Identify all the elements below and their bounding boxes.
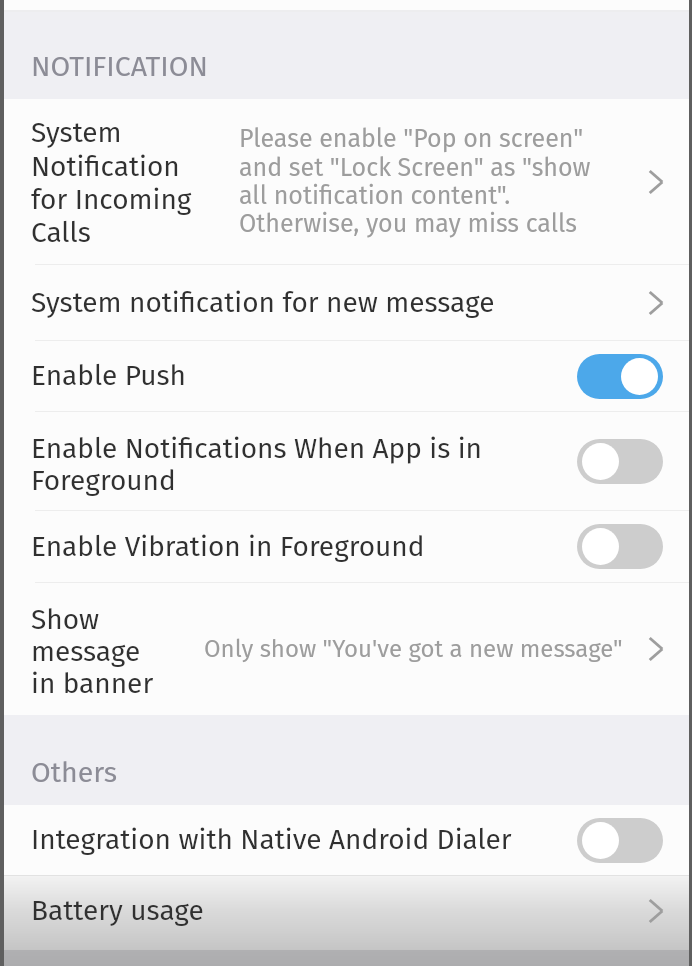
- button[interactable]: Integration with native Android dialer t…: [577, 818, 663, 863]
- staticText: Others: [31, 755, 118, 789]
- staticText: Show message in banner: [31, 603, 166, 701]
- button[interactable]: Enable Push: [4, 341, 689, 411]
- staticText: NOTIFICATION: [31, 49, 208, 83]
- staticText: Enable Notifications When App is in Fore…: [31, 432, 493, 497]
- button[interactable]: Enable Notifications When App is in Fore…: [4, 412, 689, 510]
- button[interactable]: Show message in banner: [4, 583, 689, 715]
- button[interactable]: Integration with Native Android Dialer: [4, 805, 689, 875]
- button[interactable]: Enable notifications when app is in fore…: [577, 439, 663, 484]
- staticText: Enable Push: [31, 359, 577, 393]
- button[interactable]: Enable vibration in foreground toggle: [577, 524, 663, 569]
- staticText: Please enable "Pop on screen" and set "L…: [239, 124, 591, 239]
- button[interactable]: System Notification for Incoming Calls: [4, 99, 689, 264]
- button[interactable]: Battery usage: [4, 876, 689, 966]
- staticText: Integration with Native Android Dialer: [31, 823, 577, 857]
- staticText: Only show "You've got a new message": [204, 635, 623, 664]
- staticText: Battery usage: [31, 894, 647, 928]
- button[interactable]: Enable Vibration in Foreground: [4, 511, 689, 582]
- staticText: Enable Vibration in Foreground: [31, 530, 577, 564]
- button[interactable]: System notification for new message: [4, 265, 689, 340]
- button[interactable]: Enable Push toggle: [577, 354, 663, 399]
- staticText: System notification for new message: [31, 286, 647, 320]
- staticText: System Notification for Incoming Calls: [31, 116, 201, 249]
